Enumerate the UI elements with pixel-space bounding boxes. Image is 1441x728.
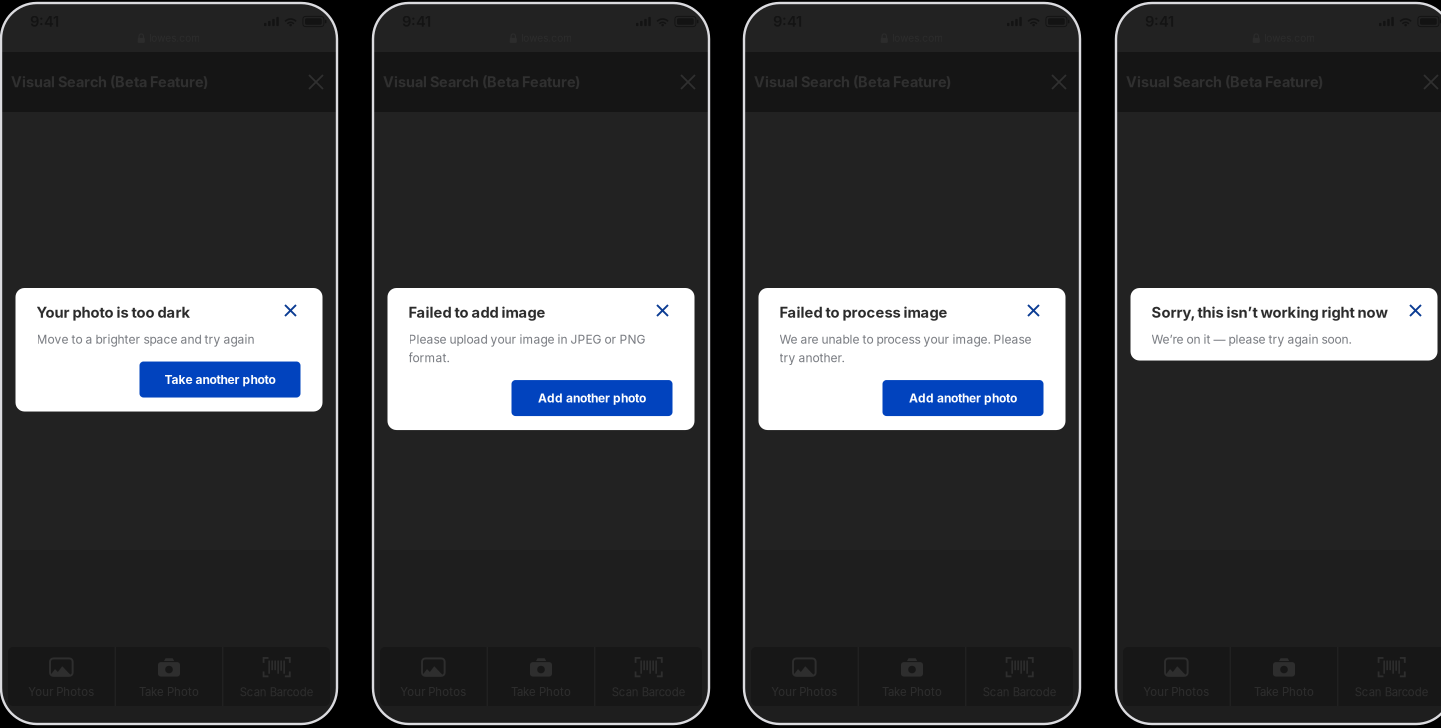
staticText: Add another photo [538, 391, 646, 405]
staticText: 9:41 [30, 13, 59, 30]
button[interactable]: Take Photo [859, 647, 965, 706]
button[interactable]: Your Photos [8, 647, 115, 706]
staticText: 9:41 [1145, 13, 1174, 30]
staticText: Take another photo [164, 372, 275, 387]
button[interactable]: Close [1023, 300, 1043, 320]
staticText: Add another photo [909, 391, 1017, 405]
button[interactable]: Close visual search [673, 67, 703, 97]
staticText: We’re on it — please try again soon. [1151, 332, 1351, 346]
staticText: Sorry, this isn’t working right now [1151, 303, 1387, 321]
staticText: Your photo is too dark [36, 303, 190, 321]
button[interactable]: Your Photos [380, 647, 487, 706]
staticText: Please upload your image in JPEG or PNG … [408, 332, 645, 365]
staticText: Take Photo [882, 685, 942, 699]
staticText: Your Photos [28, 685, 94, 699]
button[interactable]: Take another photo [139, 361, 300, 397]
button[interactable]: Scan Barcode [595, 647, 702, 706]
button[interactable]: Scan Barcode [223, 647, 330, 706]
staticText: Scan Barcode [240, 685, 314, 699]
button[interactable]: Close visual search [1044, 67, 1074, 97]
button[interactable]: Add another photo [882, 380, 1043, 416]
staticText: Visual Search (Beta Feature) [383, 73, 580, 91]
button[interactable]: Take Photo [1231, 647, 1337, 706]
staticText: 9:41 [773, 13, 802, 30]
button[interactable]: Take Photo [116, 647, 222, 706]
button[interactable]: Close [652, 300, 672, 320]
staticText: Visual Search (Beta Feature) [754, 73, 951, 91]
staticText: Failed to process image [779, 303, 947, 321]
button[interactable]: Your Photos [751, 647, 858, 706]
staticText: 9:41 [402, 13, 431, 30]
staticText: Your Photos [1143, 685, 1209, 699]
staticText: We are unable to process your image. Ple… [779, 332, 1031, 365]
staticText: Scan Barcode [612, 685, 686, 699]
button[interactable]: Scan Barcode [966, 647, 1073, 706]
staticText: Scan Barcode [1355, 685, 1429, 699]
button[interactable]: Your Photos [1123, 647, 1230, 706]
staticText: Visual Search (Beta Feature) [11, 73, 208, 91]
staticText: Move to a brighter space and try again [36, 332, 254, 346]
button[interactable]: Take Photo [488, 647, 594, 706]
staticText: Your Photos [771, 685, 837, 699]
button[interactable]: Scan Barcode [1338, 647, 1441, 706]
staticText: Your Photos [400, 685, 466, 699]
staticText: Scan Barcode [983, 685, 1057, 699]
staticText: Take Photo [511, 685, 571, 699]
button[interactable]: Close visual search [301, 67, 331, 97]
button[interactable]: Add another photo [511, 380, 672, 416]
button[interactable]: Close [1405, 300, 1425, 320]
staticText: Failed to add image [408, 303, 545, 321]
staticText: Visual Search (Beta Feature) [1126, 73, 1323, 91]
button[interactable]: Close [280, 300, 300, 320]
staticText: Take Photo [139, 685, 199, 699]
staticText: Take Photo [1254, 685, 1314, 699]
button[interactable]: Close visual search [1416, 67, 1441, 97]
